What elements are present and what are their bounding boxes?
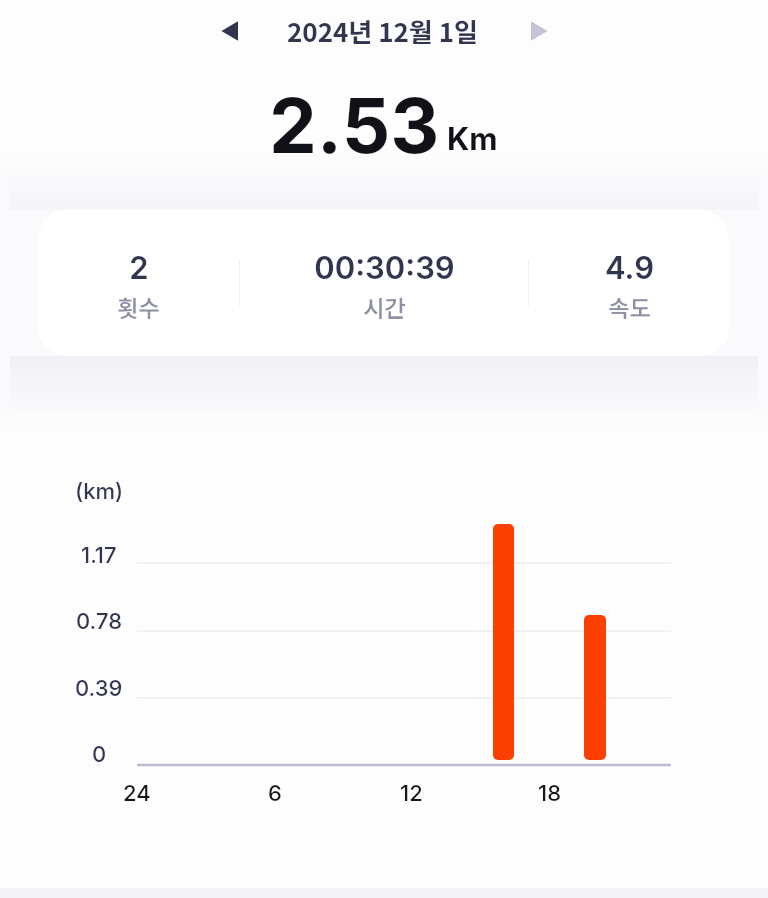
staticText: 2 bbox=[129, 249, 149, 287]
staticText: 0 bbox=[92, 741, 107, 768]
staticText: 횟수 bbox=[117, 290, 160, 323]
staticText: 0.39 bbox=[75, 675, 123, 702]
staticText: 6 bbox=[268, 780, 282, 807]
button[interactable]: Next day bbox=[511, 3, 567, 59]
staticText: 18 bbox=[538, 780, 561, 807]
staticText: 속도 bbox=[608, 290, 651, 323]
staticText: 00:30:39 bbox=[314, 249, 455, 287]
staticText: 2.53 bbox=[269, 79, 440, 171]
button[interactable]: 2 bbox=[38, 210, 239, 356]
staticText: (km) bbox=[75, 478, 124, 505]
staticText: 24 bbox=[123, 780, 151, 807]
staticText: 시간 bbox=[363, 290, 406, 323]
staticText: 0.78 bbox=[76, 608, 122, 635]
button[interactable]: 00:30:39 bbox=[240, 210, 528, 356]
staticText: 2024년 12월 1일 bbox=[287, 12, 478, 50]
staticText: 1.17 bbox=[81, 542, 117, 569]
staticText: Km bbox=[447, 120, 498, 158]
button[interactable]: Previous day bbox=[201, 3, 257, 59]
staticText: 4.9 bbox=[605, 249, 654, 287]
button[interactable]: 4.9 bbox=[529, 210, 729, 356]
staticText: 12 bbox=[400, 780, 423, 807]
